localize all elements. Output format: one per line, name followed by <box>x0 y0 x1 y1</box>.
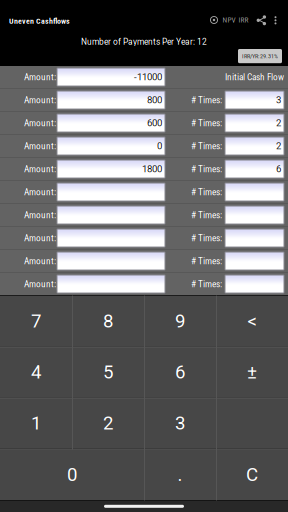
button[interactable]: < <box>216 296 288 347</box>
button[interactable]: 5 <box>72 347 144 398</box>
staticText: # Times: <box>191 186 222 197</box>
button[interactable]: . <box>144 449 216 500</box>
staticText: Amount: <box>24 255 56 266</box>
staticText: 8 <box>103 310 113 332</box>
staticText: Amount: <box>24 163 56 174</box>
button[interactable]: Amount: <box>0 227 288 249</box>
staticText: 800 <box>147 94 162 106</box>
button[interactable]: Amount: <box>0 273 288 295</box>
staticText: IRR <box>238 16 248 24</box>
staticText: Amount: <box>24 94 56 105</box>
button[interactable]: ± <box>216 347 288 398</box>
staticText: 6 <box>276 163 281 175</box>
staticText: 9 <box>175 310 185 332</box>
staticText: 3 <box>175 412 185 434</box>
staticText: 0 <box>67 464 77 486</box>
staticText: Amount: <box>24 186 56 197</box>
button[interactable]: Amount: <box>0 250 288 272</box>
button[interactable]: Amount: <box>0 181 288 203</box>
button[interactable]: 4 <box>0 347 72 398</box>
staticText: 6 <box>175 361 185 383</box>
staticText: # Times: <box>191 140 222 151</box>
button[interactable]: Amount: <box>0 204 288 226</box>
staticText: # Times: <box>191 117 222 128</box>
staticText: Uneven Cashflows <box>9 16 70 26</box>
staticText: 5 <box>103 361 113 383</box>
staticText: Amount: <box>24 232 56 243</box>
staticText: 7 <box>31 310 41 332</box>
button[interactable]: 7 <box>0 296 72 347</box>
staticText: Amount: <box>24 209 56 220</box>
button[interactable]: 8 <box>72 296 144 347</box>
staticText: 1 <box>31 412 41 434</box>
staticText: # Times: <box>191 255 222 266</box>
staticText: Initial Cash Flow <box>225 71 284 82</box>
staticText: 4 <box>31 361 41 383</box>
staticText: < <box>247 310 256 332</box>
staticText: Amount: <box>24 140 56 151</box>
button[interactable]: Amount: <box>0 112 288 134</box>
staticText: # Times: <box>191 209 222 220</box>
staticText: 600 <box>147 117 162 129</box>
staticText: 0 <box>157 140 162 152</box>
button[interactable]: C <box>216 449 288 500</box>
staticText: IRR/YR: 29.31% <box>242 52 278 60</box>
staticText: Amount: <box>24 71 56 82</box>
staticText: 3 <box>276 94 281 106</box>
staticText: # Times: <box>191 163 222 174</box>
button[interactable]: Amount: <box>0 135 288 157</box>
staticText: 1800 <box>142 163 162 175</box>
button[interactable]: 1 <box>0 398 72 449</box>
button[interactable]: Share <box>255 5 266 35</box>
button[interactable]: 2 <box>72 398 144 449</box>
button[interactable]: Amount: <box>0 158 288 180</box>
button[interactable]: More options <box>273 5 278 35</box>
button[interactable]: NPV <box>222 5 236 35</box>
button[interactable]: 6 <box>144 347 216 398</box>
button[interactable]: 0 <box>0 449 144 500</box>
button[interactable]: 3 <box>144 398 216 449</box>
staticText: -11000 <box>134 71 162 83</box>
staticText: # Times: <box>191 232 222 243</box>
staticText: 2 <box>103 412 113 434</box>
staticText: . <box>177 464 182 486</box>
staticText: 2 <box>276 140 281 152</box>
staticText: ± <box>247 361 257 383</box>
staticText: Amount: <box>24 117 56 128</box>
staticText: # Times: <box>191 278 222 289</box>
staticText: Amount: <box>24 278 56 289</box>
staticText: 2 <box>276 117 281 129</box>
button[interactable]: 9 <box>144 296 216 347</box>
staticText: # Times: <box>191 94 222 105</box>
button[interactable]: IRR <box>238 5 249 35</box>
button[interactable]: Amount: <box>0 89 288 111</box>
staticText: NPV <box>222 16 235 24</box>
button[interactable]: Goal seek <box>206 5 222 35</box>
button[interactable]: Amount: <box>0 66 288 88</box>
staticText: C <box>246 464 258 486</box>
staticText: Number of Payments Per Year: 12 <box>81 37 207 47</box>
